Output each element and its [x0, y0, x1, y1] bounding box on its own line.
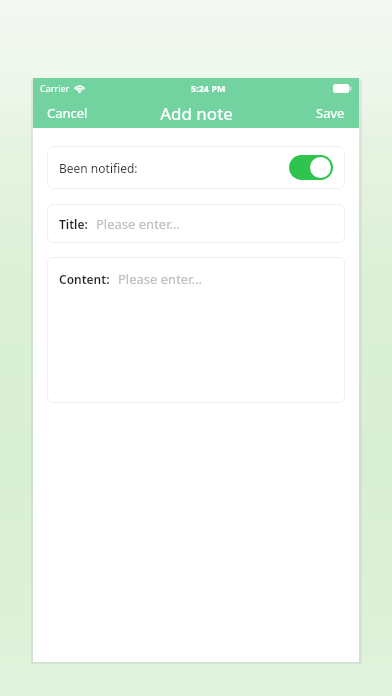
- button[interactable]: Been notified toggle, on: [289, 155, 333, 180]
- staticText: Cancel: [47, 104, 88, 122]
- button[interactable]: Cancel: [38, 99, 97, 127]
- staticText: Title:: [59, 216, 88, 232]
- other: Battery full: [333, 84, 352, 93]
- button[interactable]: Content:: [47, 257, 345, 403]
- staticText: Carrier: [40, 82, 70, 94]
- staticText: Been notified:: [59, 160, 138, 176]
- button[interactable]: Title:: [47, 204, 345, 243]
- staticText: Please enter...: [118, 270, 202, 288]
- staticText: Please enter...: [96, 215, 180, 233]
- staticText: Add note: [160, 102, 233, 125]
- other: Wi-Fi signal: [74, 84, 85, 93]
- button[interactable]: Save: [307, 99, 354, 127]
- staticText: Save: [316, 104, 345, 122]
- button[interactable]: Been notified:: [47, 146, 345, 189]
- staticText: Content:: [59, 271, 110, 287]
- staticText: 5:24 PM: [191, 82, 226, 94]
